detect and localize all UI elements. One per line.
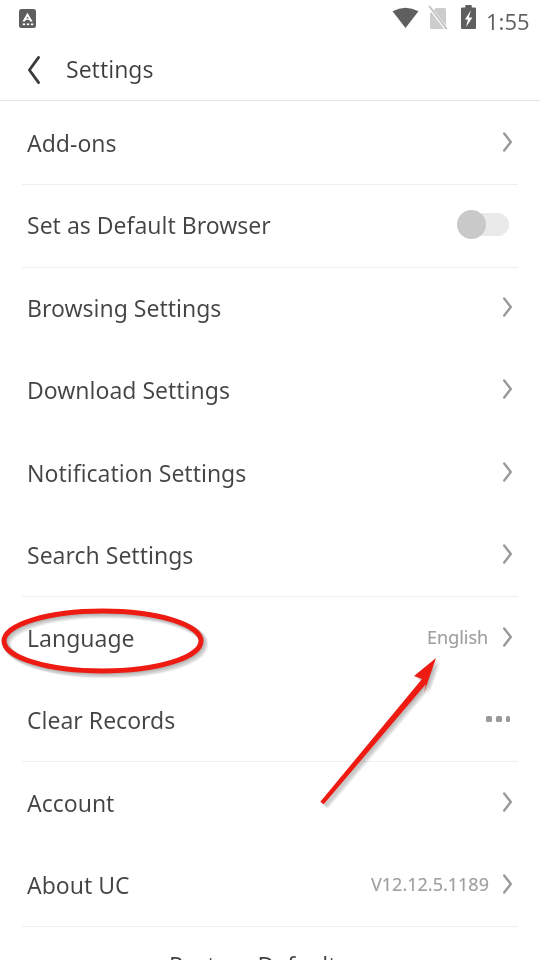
staticText: Notification Settings xyxy=(27,457,247,488)
staticText: Restore Defaults xyxy=(169,949,348,960)
button[interactable]: Restore Defaults xyxy=(0,925,540,960)
button[interactable]: Clear Records xyxy=(0,678,540,760)
button[interactable]: Account xyxy=(0,761,540,843)
button[interactable]: Search Settings xyxy=(0,513,540,595)
button[interactable]: About UC xyxy=(0,843,540,925)
staticText: V12.12.5.1189 xyxy=(371,872,489,897)
staticText: Browsing Settings xyxy=(27,292,222,323)
button[interactable]: Set as Default Browser xyxy=(0,183,540,265)
button[interactable]: Browsing Settings xyxy=(0,266,540,348)
button[interactable]: Back xyxy=(0,42,58,101)
button[interactable]: Download Settings xyxy=(0,348,540,430)
staticText: 1:55 xyxy=(486,6,530,36)
staticText: Download Settings xyxy=(27,374,230,405)
button[interactable]: Add-ons xyxy=(0,101,540,183)
staticText: Search Settings xyxy=(27,539,194,570)
staticText: English xyxy=(427,625,489,650)
staticText: Settings xyxy=(66,53,154,84)
staticText: Clear Records xyxy=(27,704,176,735)
staticText: About UC xyxy=(27,869,130,900)
staticText: Account xyxy=(27,787,115,818)
staticText: Set as Default Browser xyxy=(27,209,271,240)
button[interactable]: Notification Settings xyxy=(0,431,540,513)
button[interactable]: Language xyxy=(0,596,540,678)
staticText: Language xyxy=(27,622,135,653)
staticText: Add-ons xyxy=(27,127,117,158)
